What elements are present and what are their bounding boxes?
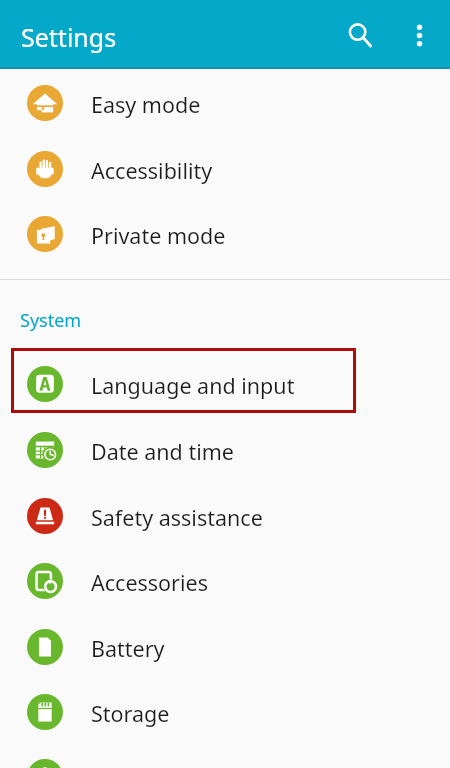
staticText: Date and time <box>91 437 234 466</box>
staticText: Language and input <box>91 371 295 400</box>
button[interactable]: Safety assistance <box>0 483 450 548</box>
staticText: Settings <box>21 20 117 54</box>
staticText: Safety assistance <box>91 503 263 532</box>
staticText: System <box>20 308 82 333</box>
staticText: Accessories <box>91 568 208 597</box>
button[interactable]: Security <box>0 744 450 768</box>
staticText: Accessibility <box>91 156 213 185</box>
staticText: Battery <box>91 634 165 663</box>
button[interactable]: Storage <box>0 679 450 744</box>
button[interactable]: Language and input <box>0 351 450 416</box>
button[interactable]: Private mode <box>0 201 450 266</box>
button[interactable]: Battery <box>0 614 450 679</box>
button[interactable]: Search <box>336 0 384 69</box>
staticText: Easy mode <box>91 90 201 119</box>
button[interactable]: Easy mode <box>0 70 450 135</box>
button[interactable]: Accessories <box>0 548 450 613</box>
button[interactable]: Date and time <box>0 417 450 482</box>
button[interactable]: Accessibility <box>0 136 450 201</box>
button[interactable]: More options <box>395 0 443 69</box>
staticText: Storage <box>91 699 170 728</box>
staticText: Private mode <box>91 221 226 250</box>
